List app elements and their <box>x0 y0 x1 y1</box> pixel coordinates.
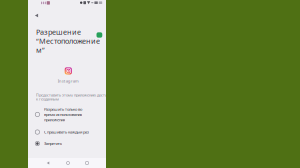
staticText: время использования <box>44 112 82 117</box>
staticText: к геоданным <box>36 96 59 102</box>
staticText: Запретить <box>44 141 62 146</box>
staticText: Разрешение <box>36 27 81 37</box>
staticText: Разрешить только во <box>44 106 82 112</box>
button[interactable]: Разрешить только во <box>28 106 106 122</box>
staticText: м” <box>36 45 45 55</box>
button[interactable]: Спрашивать каждый раз <box>28 129 106 135</box>
staticText: Instagram <box>58 78 79 84</box>
staticText: “Местоположение <box>36 36 100 46</box>
button[interactable]: Back <box>29 9 43 21</box>
button[interactable]: Запретить <box>28 141 106 146</box>
staticText: Предоставить этому приложению доступ <box>36 92 109 98</box>
button[interactable]: Back <box>38 158 58 168</box>
staticText: Спрашивать каждый раз <box>44 129 89 135</box>
button[interactable]: Recent apps <box>77 158 97 168</box>
button[interactable]: Home <box>58 158 78 168</box>
staticText: приложения <box>44 117 65 122</box>
